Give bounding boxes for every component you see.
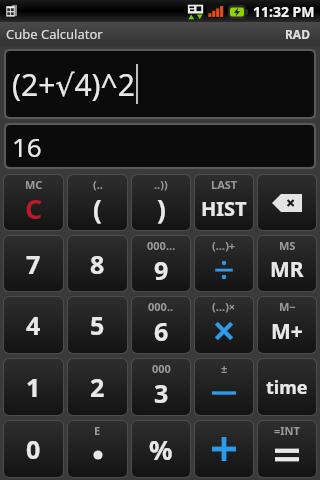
staticText: ..)) xyxy=(154,177,168,192)
button[interactable]: 5 xyxy=(68,297,127,353)
staticText: 16 xyxy=(12,129,42,164)
staticText: MS xyxy=(279,238,296,253)
button[interactable]: 4 xyxy=(4,297,63,353)
staticText: % xyxy=(149,432,173,467)
button[interactable]: (.. xyxy=(68,175,127,230)
staticText: M+ xyxy=(271,317,303,346)
button[interactable]: % xyxy=(132,421,190,477)
staticText: 9 xyxy=(154,253,169,287)
staticText: 2 xyxy=(90,370,105,404)
staticText: M− xyxy=(279,299,296,314)
staticText: 11:32 PM xyxy=(253,2,315,21)
staticText: =INT xyxy=(274,423,300,438)
staticText: time xyxy=(266,375,308,400)
button[interactable]: 000 xyxy=(132,359,190,415)
staticText: (2+√4)^2 xyxy=(12,64,135,105)
staticText: 000.. xyxy=(148,299,174,314)
staticText: LAST xyxy=(211,177,238,192)
button[interactable]: Divide xyxy=(195,236,253,291)
staticText: C xyxy=(25,190,43,227)
button[interactable]: Decimal point xyxy=(68,421,127,477)
staticText: (…)+ xyxy=(212,238,236,253)
staticText: Cube Calculator xyxy=(6,25,103,43)
staticText: HIST xyxy=(201,195,247,222)
staticText: (.. xyxy=(93,177,103,192)
staticText: (…)× xyxy=(212,299,236,314)
button[interactable]: 8 xyxy=(68,236,127,291)
staticText: 1 xyxy=(26,370,41,404)
button[interactable]: LAST xyxy=(195,175,253,230)
button[interactable]: Equals xyxy=(258,421,316,477)
staticText: 5 xyxy=(90,308,105,342)
button[interactable]: M− xyxy=(258,297,316,353)
staticText: 0 xyxy=(26,432,41,466)
button[interactable]: Multiply xyxy=(195,297,253,353)
staticText: RAD xyxy=(285,26,310,42)
button[interactable]: 000… xyxy=(132,236,190,291)
staticText: 8 xyxy=(90,247,105,281)
button[interactable]: 000.. xyxy=(132,297,190,353)
staticText: MC xyxy=(25,177,43,192)
button[interactable]: MS xyxy=(258,236,316,291)
staticText: 7 xyxy=(26,247,41,281)
button[interactable]: ..)) xyxy=(132,175,190,230)
staticText: ( xyxy=(93,191,102,226)
staticText: 4 xyxy=(26,308,41,342)
button[interactable]: 0 xyxy=(4,421,63,477)
button[interactable]: Minus xyxy=(195,359,253,415)
staticText: E xyxy=(94,423,101,438)
button[interactable]: Backspace xyxy=(258,175,316,230)
staticText: MR xyxy=(270,255,304,284)
staticText: ± xyxy=(221,361,228,376)
staticText: ) xyxy=(157,191,166,226)
button[interactable]: MC xyxy=(4,175,63,230)
button[interactable]: Plus xyxy=(195,421,253,477)
button[interactable]: 2 xyxy=(68,359,127,415)
staticText: 000 xyxy=(152,361,171,376)
button[interactable]: 7 xyxy=(4,236,63,291)
button[interactable]: time xyxy=(258,359,316,415)
staticText: 000… xyxy=(147,238,176,253)
button[interactable]: 1 xyxy=(4,359,63,415)
staticText: 6 xyxy=(154,314,169,348)
staticText: 3 xyxy=(154,376,169,410)
